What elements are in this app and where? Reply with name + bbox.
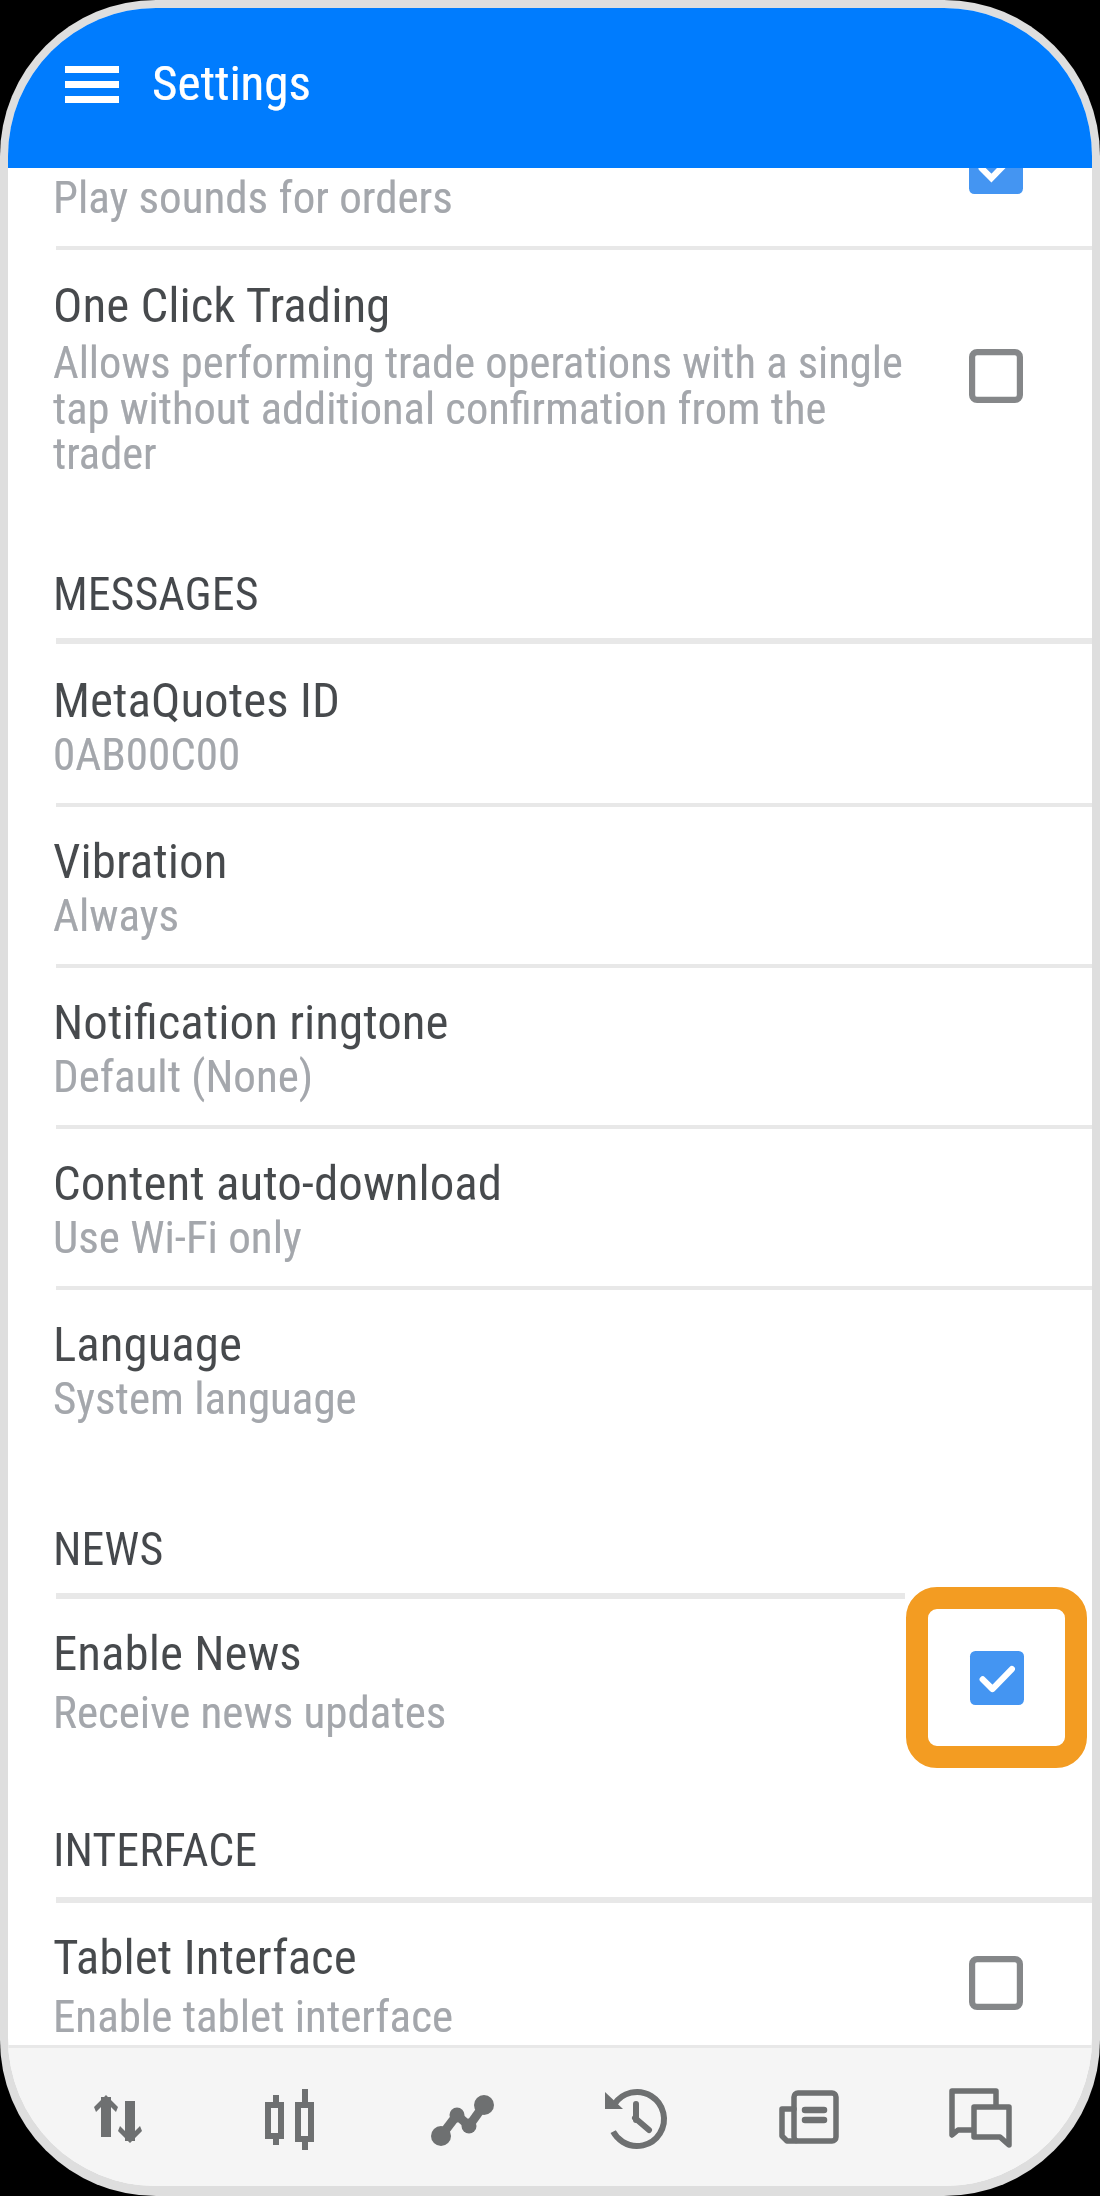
- staticText: Notification ringtone: [53, 994, 449, 1051]
- staticText: Allows performing trade operations with …: [53, 337, 933, 479]
- button[interactable]: Trade: [376, 2045, 546, 2186]
- button[interactable]: Chat: [893, 2045, 1063, 2186]
- button[interactable]: [8, 1288, 1092, 1449]
- button[interactable]: News: [723, 2045, 893, 2186]
- staticText: Use Wi-Fi only: [53, 1211, 302, 1264]
- staticText: Receive news updates: [53, 1686, 447, 1739]
- button[interactable]: [8, 644, 1092, 805]
- staticText: Play sounds for orders: [53, 171, 453, 224]
- staticText: Enable News: [53, 1625, 302, 1682]
- staticText: Default (None): [53, 1050, 314, 1103]
- staticText: Language: [53, 1316, 242, 1373]
- staticText: Tablet Interface: [53, 1929, 357, 1986]
- staticText: MESSAGES: [53, 567, 259, 621]
- button[interactable]: [8, 250, 1092, 559]
- staticText: System language: [53, 1372, 357, 1425]
- button[interactable]: [8, 805, 1092, 966]
- button[interactable]: [8, 966, 1092, 1127]
- staticText: Content auto-download: [53, 1155, 503, 1212]
- button[interactable]: Charts: [202, 2045, 372, 2186]
- button[interactable]: History: [550, 2045, 720, 2186]
- staticText: Vibration: [53, 833, 228, 890]
- staticText: NEWS: [53, 1522, 164, 1576]
- staticText: One Click Trading: [53, 277, 391, 334]
- button[interactable]: Enable News checkbox: [906, 1587, 1087, 1768]
- staticText: MetaQuotes ID: [53, 672, 340, 729]
- staticText: Settings: [152, 55, 311, 112]
- button[interactable]: Open navigation drawer: [45, 42, 139, 126]
- button[interactable]: [8, 1127, 1092, 1288]
- staticText: Enable tablet interface: [53, 1990, 454, 2043]
- button[interactable]: [8, 160, 1092, 246]
- staticText: 0AB00C00: [53, 728, 241, 781]
- staticText: Always: [53, 889, 180, 942]
- staticText: INTERFACE: [53, 1823, 258, 1877]
- button[interactable]: [8, 1599, 1092, 1799]
- button[interactable]: Quotes: [33, 2045, 203, 2186]
- button[interactable]: [8, 1903, 1092, 2044]
